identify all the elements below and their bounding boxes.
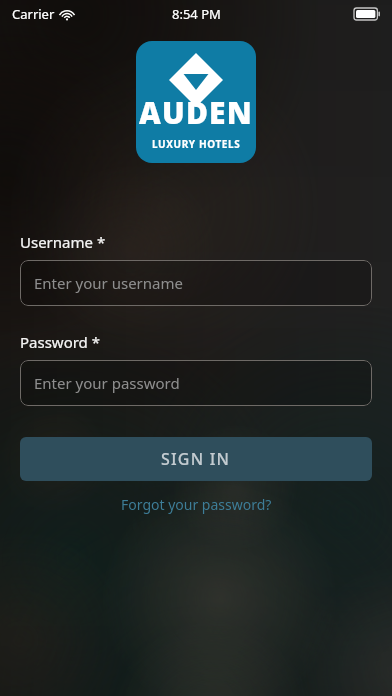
staticText: LUXURY HOTELS — [152, 137, 241, 151]
staticText: AUDEN — [139, 92, 253, 133]
staticText: Password * — [20, 332, 101, 352]
button[interactable]: SIGN IN — [20, 437, 372, 481]
staticText: SIGN IN — [161, 448, 231, 470]
button[interactable]: Forgot your password? — [115, 491, 278, 518]
button[interactable]: Password input field — [20, 360, 372, 406]
staticText: 8:54 PM — [172, 5, 221, 23]
staticText: Enter your username — [34, 273, 183, 293]
button[interactable]: Username input field — [20, 260, 372, 306]
staticText: Forgot your password? — [121, 495, 272, 514]
staticText: Carrier — [12, 5, 55, 23]
staticText: Username * — [20, 232, 106, 252]
staticText: Enter your password — [34, 373, 180, 393]
